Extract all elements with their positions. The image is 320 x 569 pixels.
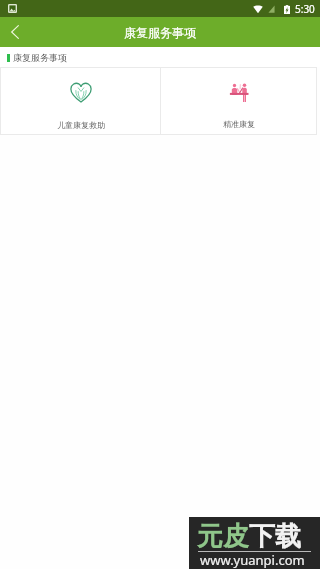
- staticText: 下载: [249, 520, 301, 553]
- staticText: 元皮: [197, 520, 249, 553]
- button[interactable]: 精准康复: [161, 68, 316, 134]
- staticText: 康复服务事项: [13, 52, 67, 63]
- staticText: 康复服务事项: [124, 25, 196, 40]
- button[interactable]: Back: [0, 17, 30, 47]
- staticText: www.yuanpi.com: [200, 551, 305, 569]
- staticText: 精准康复: [223, 119, 255, 129]
- staticText: 儿童康复救助: [57, 120, 105, 130]
- button[interactable]: 儿童康复救助: [1, 68, 160, 134]
- staticText: 5:30: [295, 2, 315, 16]
